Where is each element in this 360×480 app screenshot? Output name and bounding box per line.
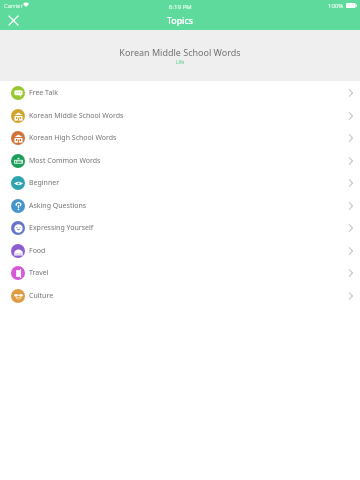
button[interactable]: Travel bbox=[0, 261, 360, 284]
staticText: Topics bbox=[0, 15, 360, 27]
staticText: Culture bbox=[29, 291, 54, 301]
staticText: Carrier bbox=[4, 2, 23, 10]
staticText: Asking Questions bbox=[29, 201, 87, 211]
button[interactable]: Most Common Words bbox=[0, 149, 360, 172]
staticText: Life bbox=[0, 59, 360, 66]
staticText: 6:19 PM bbox=[169, 2, 192, 10]
button[interactable]: Korean High School Words bbox=[0, 126, 360, 149]
button[interactable]: Food bbox=[0, 239, 360, 262]
staticText: 100% bbox=[328, 2, 344, 10]
staticText: Korean Middle School Words bbox=[0, 46, 360, 58]
button[interactable]: Free Talk bbox=[0, 81, 360, 104]
staticText: Expressing Yourself bbox=[29, 223, 94, 233]
button[interactable]: Culture bbox=[0, 284, 360, 307]
button[interactable]: Korean Middle School Words bbox=[0, 104, 360, 127]
button[interactable]: Beginner bbox=[0, 171, 360, 194]
staticText: Korean High School Words bbox=[29, 133, 117, 143]
staticText: Most Common Words bbox=[29, 156, 101, 166]
staticText: Beginner bbox=[29, 178, 60, 188]
staticText: Travel bbox=[29, 268, 49, 278]
staticText: Free Talk bbox=[29, 88, 58, 98]
button[interactable]: Close bbox=[5, 12, 22, 29]
button[interactable]: Expressing Yourself bbox=[0, 216, 360, 239]
staticText: Food bbox=[29, 246, 46, 256]
staticText: Korean Middle School Words bbox=[29, 111, 124, 121]
button[interactable]: Asking Questions bbox=[0, 194, 360, 217]
